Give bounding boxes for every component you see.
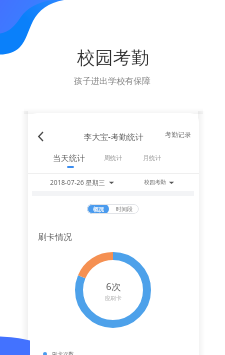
button[interactable]: 返回 [32,129,48,143]
staticText: 6次 [106,280,121,293]
staticText: 应刷卡 [105,295,122,302]
staticText: 孩子进出学校有保障 [74,76,151,87]
button[interactable]: 周统计 [92,150,134,166]
button[interactable]: 当天统计 [48,150,90,166]
staticText: 周统计 [104,154,122,162]
staticText: 概况 [93,206,104,213]
staticText: 2018-07-26 星期三 [50,178,106,187]
staticText: 刷卡情况 [38,232,72,243]
button[interactable]: 考勤记录 [163,128,193,141]
button[interactable]: 刷卡次数 [43,349,74,355]
staticText: 校园考勤 [77,47,149,70]
staticText: 校园考勤 [144,179,166,186]
staticText: 李大宝-考勤统计 [28,131,199,142]
button[interactable]: 概况 [87,204,109,214]
button[interactable]: 2018-07-26 星期三 [50,175,114,189]
button[interactable]: 校园考勤 [144,175,174,189]
staticText: 月统计 [143,154,161,162]
staticText: 当天统计 [53,153,85,163]
button[interactable]: 时间段 [109,204,139,214]
staticText: 刷卡次数 [52,351,74,355]
staticText: 时间段 [116,206,133,213]
button[interactable]: 月统计 [131,150,173,166]
staticText: 考勤记录 [165,131,191,139]
